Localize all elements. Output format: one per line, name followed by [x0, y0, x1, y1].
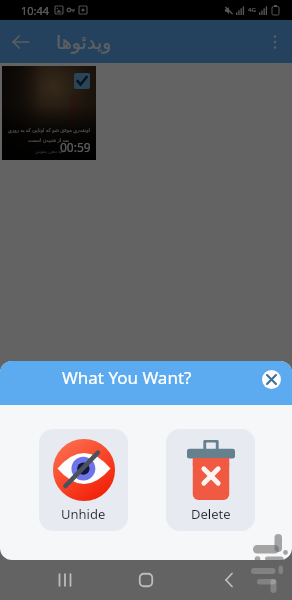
- button[interactable]: Unhide: [39, 429, 128, 531]
- staticText: 00:59: [60, 139, 91, 155]
- button[interactable]: Selected: [74, 73, 90, 89]
- staticText: به دهن بمونن!: [35, 148, 64, 155]
- staticText: Unhide: [61, 505, 106, 523]
- staticText: ویدئوها: [56, 31, 112, 53]
- button[interactable]: Close: [262, 370, 281, 389]
- button[interactable]: Delete: [166, 429, 255, 531]
- staticText: 10:44: [21, 3, 50, 18]
- button[interactable]: Home: [130, 564, 162, 596]
- staticText: Delete: [191, 505, 231, 523]
- button[interactable]: More options: [262, 29, 288, 55]
- staticText: اونقدری موفق شو که اونایی که به روزی: [8, 127, 91, 134]
- staticText: بعد از شنیدن اسمت: [28, 137, 70, 144]
- button[interactable]: Recents: [49, 564, 81, 596]
- staticText: What You Want?: [62, 366, 192, 389]
- button[interactable]: Back: [212, 564, 244, 596]
- button[interactable]: Back: [7, 28, 35, 56]
- button[interactable]: Selected: [2, 66, 96, 160]
- staticText: 4G: [248, 6, 256, 14]
